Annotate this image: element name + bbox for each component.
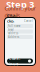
- staticText: Checkout: [7, 13, 16, 29]
- staticText: Full name: [8, 24, 21, 28]
- staticText: Cancel: [24, 19, 33, 23]
- staticText: Continue: [9, 56, 20, 66]
- staticText: Address: [8, 35, 19, 39]
- staticText: Email address: [8, 28, 18, 35]
- staticText: Step 3: [6, 0, 34, 11]
- button[interactable]: Continue: [7, 58, 33, 63]
- staticText: Confirm your details: [4, 5, 35, 19]
